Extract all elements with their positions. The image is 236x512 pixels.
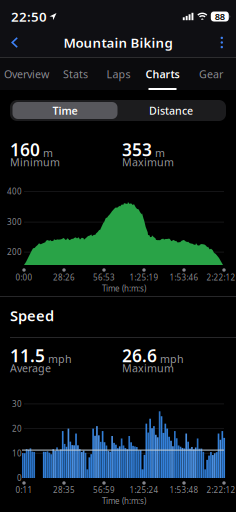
staticText: 20: [12, 423, 22, 434]
staticText: Time (h:m:s): [102, 283, 146, 294]
staticText: 1:25:24: [129, 485, 158, 495]
staticText: 56:59: [93, 485, 115, 495]
staticText: 10: [12, 448, 22, 459]
button[interactable]: More options: [221, 29, 236, 56]
staticText: Average: [10, 361, 51, 375]
button[interactable]: Distance: [118, 100, 224, 121]
button[interactable]: Back: [0, 29, 18, 56]
button[interactable]: Laps: [98, 58, 139, 90]
staticText: 200: [7, 247, 22, 257]
button[interactable]: Gear: [186, 58, 236, 90]
staticText: 2:22:12: [206, 272, 235, 283]
staticText: 88: [215, 10, 225, 23]
staticText: Minimum: [10, 155, 60, 169]
staticText: 353: [122, 138, 152, 161]
staticText: Time (h:m:s): [102, 496, 146, 506]
staticText: 0:11: [15, 485, 32, 495]
staticText: Overview: [4, 67, 49, 81]
staticText: 1:53:48: [169, 485, 198, 495]
staticText: Charts: [145, 67, 179, 81]
button[interactable]: Time: [12, 100, 118, 121]
button[interactable]: Stats: [53, 58, 98, 90]
staticText: Distance: [149, 103, 193, 118]
staticText: 0:00: [15, 272, 32, 283]
staticText: m: [155, 146, 165, 160]
staticText: 300: [7, 217, 22, 227]
staticText: 30: [12, 399, 22, 409]
staticText: 26.6: [122, 344, 157, 367]
staticText: mph: [48, 352, 72, 366]
button[interactable]: Overview: [0, 58, 53, 90]
staticText: Maximum: [122, 361, 174, 375]
staticText: 2:22:12: [206, 485, 235, 495]
button[interactable]: Charts: [139, 58, 186, 90]
staticText: Maximum: [122, 155, 174, 169]
staticText: 160: [10, 138, 40, 161]
staticText: 1:53:46: [169, 272, 198, 283]
staticText: 11.5: [10, 344, 45, 367]
staticText: mph: [160, 352, 184, 366]
staticText: Gear: [199, 67, 223, 81]
staticText: 400: [7, 186, 22, 197]
staticText: Stats: [63, 67, 88, 81]
staticText: m: [43, 146, 53, 160]
staticText: 56:53: [93, 272, 115, 283]
staticText: 28:35: [53, 485, 75, 495]
staticText: 0: [17, 473, 22, 483]
staticText: 22:50: [11, 8, 47, 25]
staticText: Laps: [106, 67, 130, 81]
staticText: 28:26: [53, 272, 75, 283]
staticText: Mountain Biking: [63, 34, 172, 51]
staticText: Speed: [10, 306, 54, 325]
staticText: 1:25:19: [129, 272, 158, 283]
staticText: Time: [52, 103, 77, 118]
